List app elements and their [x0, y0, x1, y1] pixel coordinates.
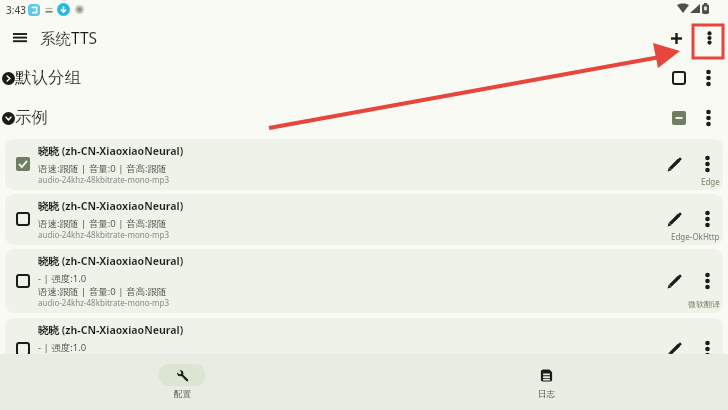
staticText: 语速:跟随 | 音量:0 | 音高:跟随 [38, 217, 167, 230]
staticText: 日志 [538, 389, 555, 400]
staticText: 微软翻译 [688, 299, 720, 309]
button[interactable]: Voice options [693, 205, 721, 233]
staticText: 3:43 [6, 3, 26, 17]
button[interactable]: Add [661, 23, 691, 53]
button[interactable]: Select voice [5, 194, 723, 245]
button[interactable]: More options [694, 23, 724, 53]
staticText: Edge-OkHttp [671, 231, 720, 242]
staticText: - | 强度:1.0 [38, 341, 87, 354]
button[interactable]: Select voice [8, 149, 38, 179]
staticText: 配置 [174, 389, 191, 400]
button[interactable]: Navigation menu [5, 23, 34, 52]
staticText: audio-24khz-48kbitrate-mono-mp3 [38, 297, 170, 308]
button[interactable]: Select voice [5, 318, 723, 380]
staticText: audio-24khz-48kbitrate-mono-mp3 [38, 229, 170, 240]
button[interactable]: 日志 [364, 354, 728, 410]
staticText: 系统TTS [40, 27, 98, 48]
button[interactable]: Voice options [693, 335, 721, 363]
button[interactable]: Group options [693, 63, 723, 93]
staticText: 晓晓 (zh-CN-XiaoxiaoNeural) [38, 199, 184, 213]
button[interactable]: Edit [660, 205, 688, 233]
staticText: Edge [701, 176, 720, 187]
button[interactable]: Voice options [693, 150, 721, 178]
button[interactable]: Select voice [8, 204, 38, 234]
staticText: 晓晓 (zh-CN-XiaoxiaoNeural) [38, 254, 184, 268]
staticText: 默认分组 [15, 67, 81, 88]
staticText: 晓晓 (zh-CN-XiaoxiaoNeural) [38, 323, 184, 337]
button[interactable]: Select all in group [664, 103, 694, 133]
button[interactable]: Edit [660, 335, 688, 363]
button[interactable]: 示例 [0, 102, 728, 139]
button[interactable]: Select all in group [664, 63, 694, 93]
button[interactable]: Select voice [8, 334, 38, 364]
button[interactable]: 默认分组 [0, 62, 728, 99]
button[interactable]: 配置 [0, 354, 364, 410]
button[interactable]: Edit [660, 267, 688, 295]
staticText: 晓晓 (zh-CN-XiaoxiaoNeural) [38, 144, 184, 158]
button[interactable]: Group options [693, 103, 723, 133]
button[interactable]: Select voice [5, 139, 723, 190]
staticText: 语速:跟随 | 音量:0 | 音高:跟随 [38, 285, 167, 298]
button[interactable]: Select voice [5, 249, 723, 313]
staticText: - | 强度:1.0 [38, 272, 87, 285]
button[interactable]: Voice options [693, 267, 721, 295]
button[interactable]: Select voice [8, 266, 38, 296]
staticText: audio-24khz-48kbitrate-mono-mp3 [38, 174, 170, 185]
staticText: 示例 [15, 107, 48, 128]
button[interactable]: Edit [660, 150, 688, 178]
staticText: 语速:跟随 | 音量:0 | 音高:跟随 [38, 162, 167, 175]
